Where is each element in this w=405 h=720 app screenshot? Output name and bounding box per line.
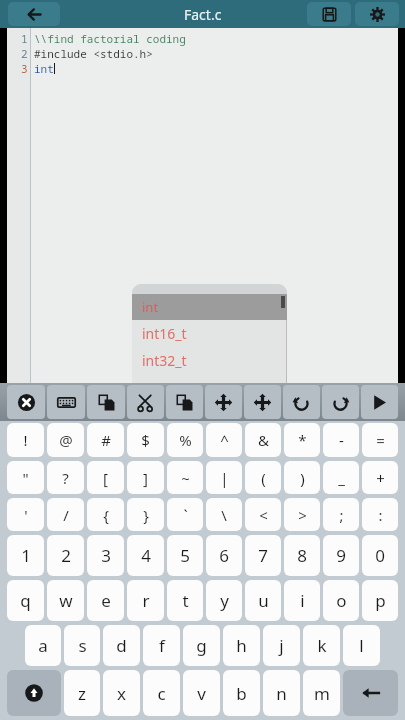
button[interactable]: + [362,461,398,494]
staticText: 7 [258,544,268,567]
button[interactable]: Redo [322,385,359,419]
button[interactable]: int16_t [132,320,287,347]
button[interactable]: 9 [323,535,359,576]
button[interactable]: ; [323,498,359,531]
button[interactable]: 5 [167,535,203,576]
button[interactable]: r [127,580,164,621]
button[interactable]: w [47,580,84,621]
button[interactable]: [ [87,461,124,494]
staticText: * [298,430,307,450]
button[interactable]: / [47,498,84,531]
staticText: s [78,634,87,657]
button[interactable]: 1 [7,535,44,576]
button[interactable]: z [64,670,100,716]
staticText: 1 [21,544,31,567]
button[interactable]: m [303,670,340,716]
button[interactable]: ] [127,461,164,494]
button[interactable]: * [284,423,320,457]
button[interactable]: @ [47,423,84,457]
staticText: int32_t [142,351,187,370]
button[interactable]: % [167,423,203,457]
button[interactable]: " [7,461,44,494]
button[interactable]: Shift [7,670,61,716]
button[interactable]: Select all [87,385,125,419]
button[interactable]: e [87,580,124,621]
button[interactable]: \ [206,498,242,531]
button[interactable]: d [103,625,140,666]
button[interactable]: i [284,580,320,621]
button[interactable]: ^ [206,423,242,457]
button[interactable]: int32_t [132,347,287,374]
button[interactable]: ? [47,461,84,494]
staticText: 5 [180,544,190,567]
staticText: q [20,589,31,612]
button[interactable]: Save [307,2,351,26]
button[interactable]: l [343,625,380,666]
button[interactable]: 0 [362,535,398,576]
button[interactable]: f [143,625,180,666]
button[interactable]: Cut [127,385,164,419]
staticText: 3 [101,544,111,567]
button[interactable]: 7 [245,535,281,576]
button[interactable]: a [25,625,61,666]
button[interactable]: Backspace [343,670,398,716]
button[interactable]: n [263,670,300,716]
button[interactable]: : [362,498,398,531]
button[interactable]: 2 [47,535,84,576]
button[interactable]: g [183,625,220,666]
staticText: \\find factorial coding [34,31,186,46]
button[interactable]: { [87,498,124,531]
button[interactable]: = [362,423,398,457]
button[interactable]: _ [323,461,359,494]
button[interactable]: y [206,580,242,621]
button[interactable]: | [206,461,242,494]
button[interactable]: o [323,580,359,621]
button[interactable]: j [263,625,300,666]
button[interactable]: s [64,625,100,666]
button[interactable]: x [103,670,140,716]
button[interactable]: ( [245,461,281,494]
button[interactable]: Close [7,385,45,419]
button[interactable]: < [245,498,281,531]
button[interactable]: ) [284,461,320,494]
button[interactable]: Undo [283,385,320,419]
button[interactable]: - [323,423,359,457]
button[interactable]: int [132,284,287,639]
button[interactable]: ' [7,498,44,531]
button[interactable]: h [223,625,260,666]
button[interactable]: Navigate [244,385,281,419]
staticText: ; [339,505,344,525]
button[interactable]: 4 [127,535,164,576]
button[interactable]: 8 [284,535,320,576]
button[interactable]: $ [127,423,164,457]
staticText: p [375,589,386,612]
staticText: { [103,505,109,525]
button[interactable]: > [284,498,320,531]
button[interactable]: b [223,670,260,716]
button[interactable]: Move [205,385,242,419]
staticText: l [359,634,364,657]
button[interactable]: p [362,580,398,621]
button[interactable]: Paste [166,385,203,419]
button[interactable]: ! [7,423,44,457]
button[interactable]: Settings [355,2,399,26]
button[interactable]: q [7,580,44,621]
button[interactable]: Run [361,385,398,419]
button[interactable]: Keyboard [47,385,85,419]
button[interactable]: v [183,670,220,716]
button[interactable]: k [303,625,340,666]
button[interactable]: } [127,498,164,531]
button[interactable]: & [245,423,281,457]
button[interactable]: Back [8,2,60,26]
button[interactable]: u [245,580,281,621]
button[interactable]: t [167,580,203,621]
button[interactable]: 3 [87,535,124,576]
staticText: # [101,430,111,450]
button[interactable]: # [87,423,124,457]
button[interactable]: ` [167,498,203,531]
button[interactable]: c [143,670,180,716]
button[interactable]: 6 [206,535,242,576]
staticText: int [34,61,54,76]
button[interactable]: ~ [167,461,203,494]
staticText: $ [141,430,150,450]
